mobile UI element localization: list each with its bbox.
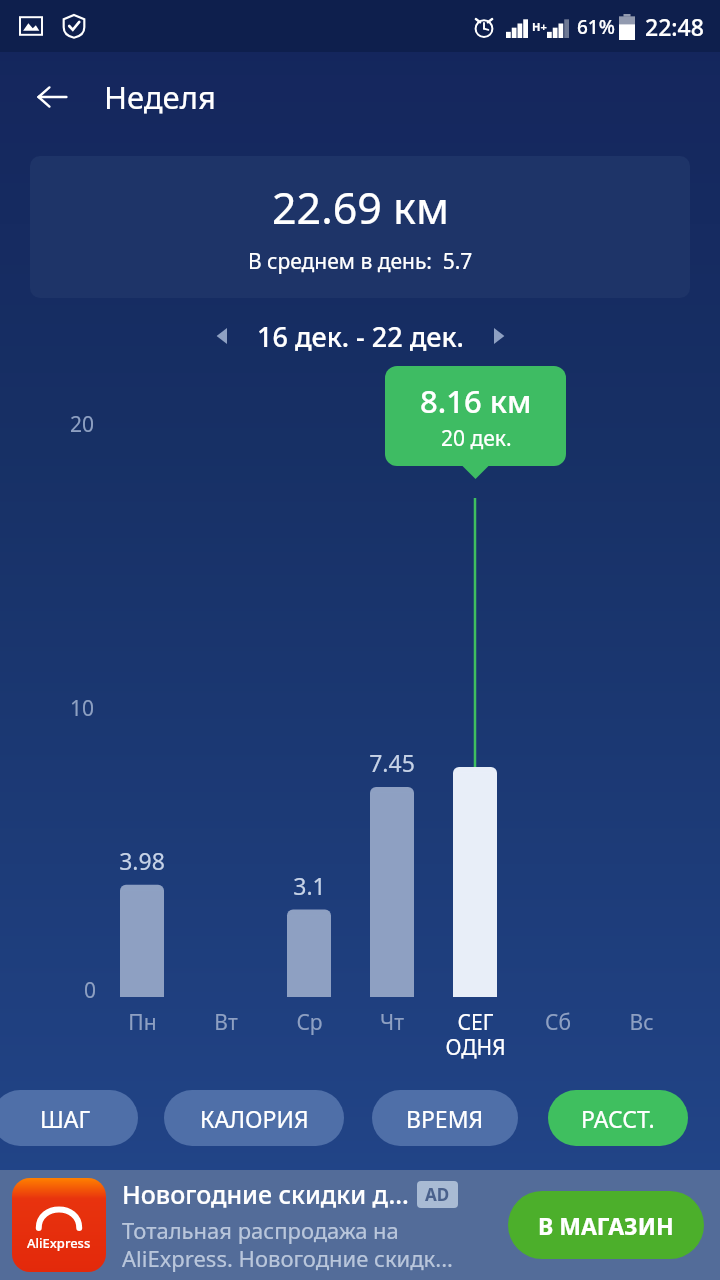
staticText: Новогодние скидки д... xyxy=(122,1177,409,1211)
staticText: 22:48 xyxy=(645,11,704,42)
button[interactable]: 8.16 км xyxy=(385,366,566,466)
staticText: H+ xyxy=(532,19,547,34)
staticText: Ср xyxy=(296,1008,323,1037)
staticText: 3.98 xyxy=(119,845,165,876)
staticText: Тотальная распродажа на AliExpress. Ново… xyxy=(122,1215,453,1273)
button[interactable]: Вс xyxy=(596,1008,686,1037)
button[interactable]: ШАГ xyxy=(0,1090,138,1146)
staticText: Сб xyxy=(545,1008,571,1037)
staticText: 20 дек. xyxy=(441,424,512,453)
staticText: AD xyxy=(425,1183,450,1206)
staticText: В МАГАЗИН xyxy=(538,1210,674,1241)
staticText: ВРЕМЯ xyxy=(406,1103,484,1134)
button[interactable]: В МАГАЗИН xyxy=(508,1191,704,1259)
staticText: Чт xyxy=(380,1008,404,1037)
button[interactable]: Сб xyxy=(513,1008,603,1037)
staticText: В среднем в день: 5.7 xyxy=(248,247,473,276)
staticText: 22.69 км xyxy=(272,178,449,237)
button[interactable]: Пн xyxy=(97,1008,187,1037)
staticText: 20 xyxy=(70,410,95,439)
staticText: 10 xyxy=(70,694,95,723)
staticText: 61% xyxy=(577,14,615,40)
button[interactable]: КАЛОРИЯ xyxy=(164,1090,344,1146)
staticText: AliExpress xyxy=(27,1234,91,1252)
staticText: 7.45 xyxy=(369,747,415,778)
staticText: ШАГ xyxy=(40,1103,91,1134)
button[interactable]: Ср xyxy=(264,1008,354,1037)
staticText: 0 xyxy=(84,976,97,1005)
button[interactable]: РАССТ. xyxy=(548,1090,688,1146)
staticText: Вс xyxy=(629,1008,654,1037)
staticText: Неделя xyxy=(104,76,216,118)
staticText: СЕГ ОДНЯ xyxy=(445,1008,506,1061)
button[interactable]: Back xyxy=(22,67,82,127)
staticText: Пн xyxy=(128,1008,157,1037)
staticText: РАССТ. xyxy=(581,1103,655,1134)
button[interactable]: Next week xyxy=(476,314,520,358)
staticText: КАЛОРИЯ xyxy=(200,1103,309,1134)
button[interactable]: Вт xyxy=(181,1008,271,1037)
button[interactable]: AliExpress xyxy=(0,1170,720,1280)
staticText: 3.1 xyxy=(293,870,326,901)
staticText: Вт xyxy=(214,1008,238,1037)
staticText: 16 дек. - 22 дек. xyxy=(257,318,464,355)
staticText: 8.16 км xyxy=(420,380,532,422)
button[interactable]: ВРЕМЯ xyxy=(372,1090,518,1146)
button[interactable]: СЕГ ОДНЯ xyxy=(430,1008,520,1061)
button[interactable]: 22.69 км xyxy=(30,156,690,298)
button[interactable]: Previous week xyxy=(201,314,245,358)
button[interactable]: Чт xyxy=(347,1008,437,1037)
